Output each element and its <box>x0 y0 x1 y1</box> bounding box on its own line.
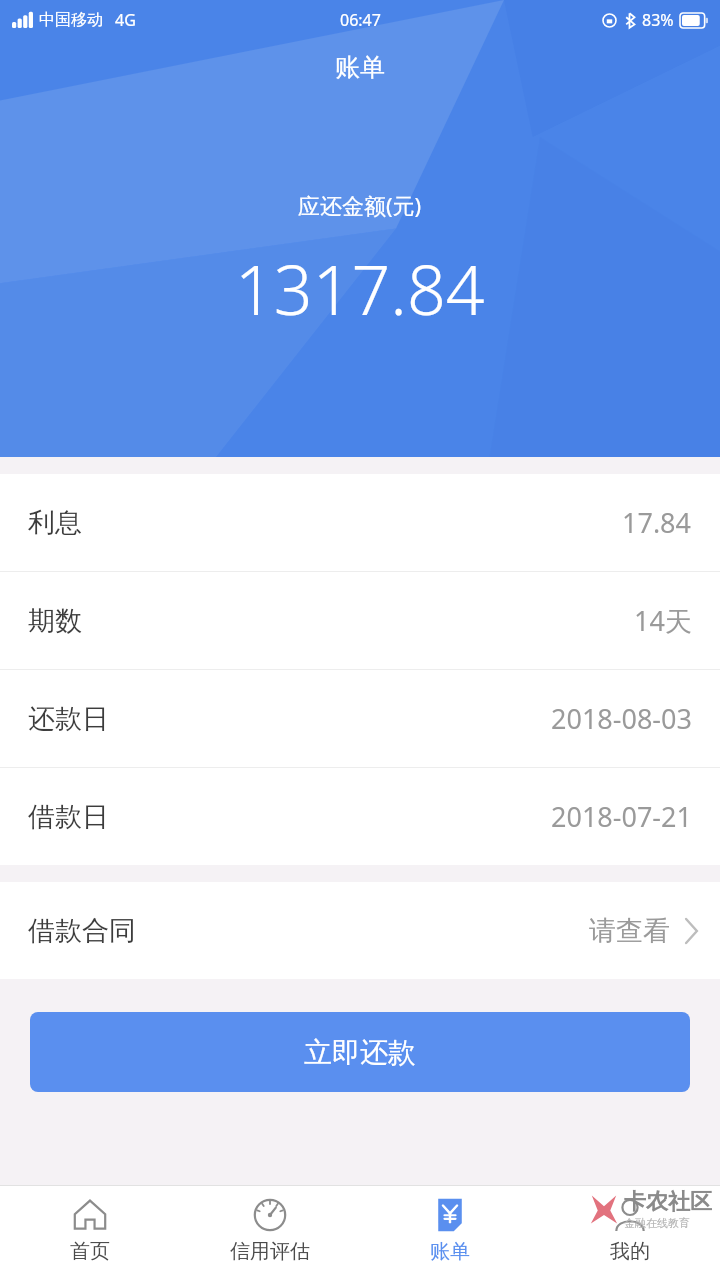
other: 账单 <box>431 1196 469 1234</box>
button[interactable]: 借款合同 <box>0 882 720 979</box>
staticText: 83% <box>642 9 674 31</box>
staticText: 中国移动 <box>39 10 103 30</box>
staticText: 请查看 <box>589 914 670 948</box>
button[interactable]: 我的 <box>540 1186 720 1280</box>
staticText: 金融在线教育 <box>624 1216 690 1230</box>
button[interactable]: 立即还款 <box>30 1012 690 1092</box>
other: 我的 <box>611 1196 649 1234</box>
button[interactable]: 账单 <box>360 1186 540 1280</box>
staticText: 账单 <box>430 1239 470 1264</box>
staticText: 卡农社区 <box>624 1188 712 1216</box>
staticText: 利息 <box>28 506 82 540</box>
button[interactable]: 利息 <box>0 474 720 571</box>
other: 信用评估 <box>251 1196 289 1234</box>
staticText: 1317.84 <box>235 242 485 335</box>
staticText: 17.84 <box>622 504 692 541</box>
button[interactable]: 借款日 <box>0 768 720 865</box>
staticText: 我的 <box>610 1239 650 1264</box>
staticText: 期数 <box>28 604 82 638</box>
staticText: 首页 <box>70 1239 110 1264</box>
staticText: 借款日 <box>28 800 109 834</box>
staticText: 2018-08-03 <box>551 700 692 737</box>
other: 首页 <box>71 1196 109 1234</box>
staticText: 还款日 <box>28 702 109 736</box>
staticText: 4G <box>115 9 136 31</box>
staticText: 2018-07-21 <box>551 798 692 835</box>
staticText: 应还金额(元) <box>298 190 422 220</box>
staticText: 信用评估 <box>230 1239 310 1264</box>
button[interactable]: 还款日 <box>0 670 720 767</box>
staticText: 06:47 <box>340 9 381 31</box>
button[interactable]: 期数 <box>0 572 720 669</box>
button[interactable]: 首页 <box>0 1186 180 1280</box>
staticText: 账单 <box>335 52 385 83</box>
staticText: 立即还款 <box>304 1035 416 1070</box>
staticText: 14天 <box>634 602 692 639</box>
staticText: 借款合同 <box>28 914 136 948</box>
button[interactable]: 信用评估 <box>180 1186 360 1280</box>
